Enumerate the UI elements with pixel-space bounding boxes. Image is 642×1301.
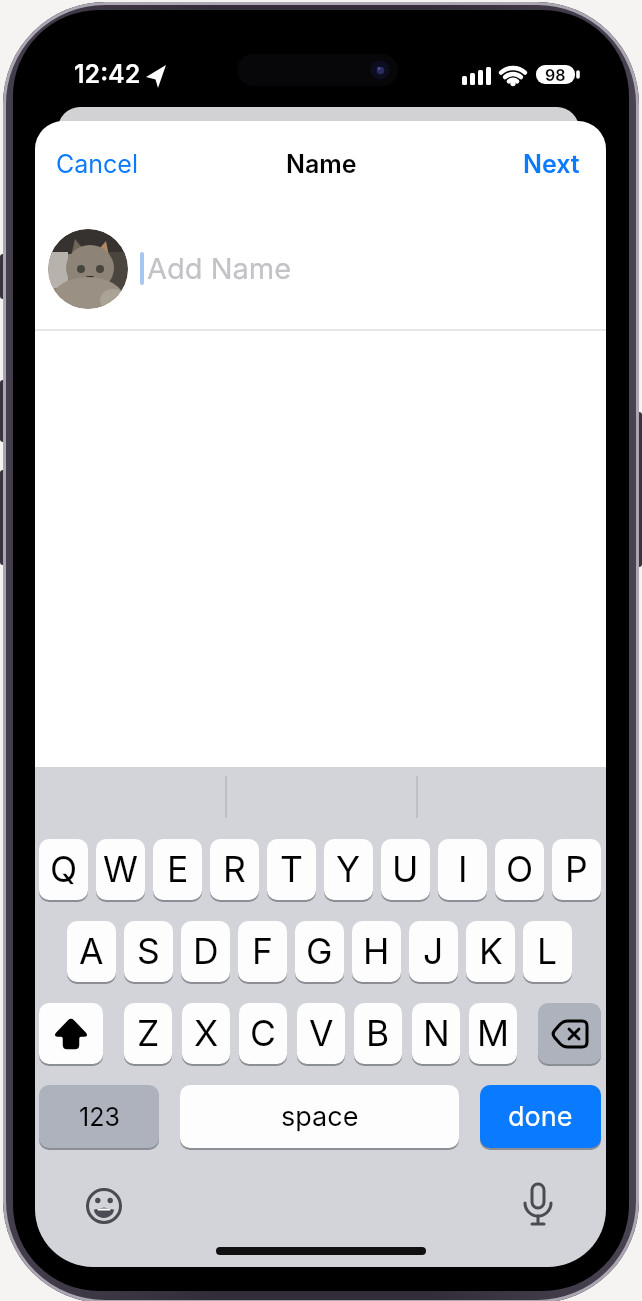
button[interactable]: K (466, 921, 515, 982)
staticText: Z (137, 1012, 160, 1055)
button[interactable]: done (480, 1085, 601, 1148)
button[interactable]: D (181, 921, 230, 982)
staticText: Add Name (147, 251, 292, 286)
staticText: A (79, 930, 104, 973)
button[interactable] (538, 1003, 601, 1064)
staticText: T (280, 848, 303, 891)
staticText: 12:42 (74, 59, 141, 89)
button[interactable]: Y (324, 839, 373, 900)
staticText: I (458, 848, 468, 891)
button[interactable]: H (352, 921, 401, 982)
button[interactable]: 123 (39, 1085, 159, 1148)
staticText: Q (50, 848, 78, 891)
button[interactable]: S (124, 921, 173, 982)
staticText: Next (523, 149, 580, 179)
button[interactable]: X (182, 1003, 230, 1064)
staticText: J (423, 930, 444, 973)
button[interactable]: Add Name (147, 251, 292, 286)
button[interactable]: U (381, 839, 430, 900)
button[interactable]: T (267, 839, 316, 900)
staticText: D (193, 930, 219, 973)
staticText: V (309, 1012, 334, 1055)
staticText: Cancel (56, 149, 138, 179)
button[interactable]: J (409, 921, 458, 982)
staticText: E (167, 848, 189, 891)
button[interactable]: Next (518, 148, 584, 180)
button[interactable]: B (354, 1003, 402, 1064)
staticText: G (306, 930, 333, 973)
button[interactable]: O (495, 839, 544, 900)
staticText: U (392, 848, 419, 891)
button[interactable]: E (153, 839, 202, 900)
button[interactable]: M (469, 1003, 517, 1064)
button[interactable] (518, 1182, 558, 1230)
staticText: H (363, 930, 390, 973)
button[interactable]: V (297, 1003, 345, 1064)
button[interactable]: A (67, 921, 116, 982)
staticText: S (137, 930, 160, 973)
staticText: C (250, 1012, 276, 1055)
button[interactable]: L (523, 921, 572, 982)
button[interactable] (84, 1186, 124, 1226)
button[interactable]: Z (124, 1003, 172, 1064)
staticText: W (103, 848, 138, 891)
staticText: N (423, 1012, 450, 1055)
staticText: M (477, 1012, 510, 1055)
button[interactable]: Q (39, 839, 88, 900)
staticText: X (194, 1012, 219, 1055)
button[interactable]: P (552, 839, 601, 900)
button[interactable]: C (239, 1003, 287, 1064)
button[interactable]: F (238, 921, 287, 982)
button[interactable]: G (295, 921, 344, 982)
staticText: space (281, 1100, 359, 1133)
staticText: Y (336, 848, 361, 891)
staticText: F (252, 930, 273, 973)
button[interactable]: Cancel (50, 148, 144, 180)
staticText: R (223, 848, 246, 891)
staticText: 98 (545, 65, 566, 84)
staticText: O (506, 848, 534, 891)
staticText: 123 (79, 1102, 120, 1132)
button[interactable]: space (180, 1085, 459, 1148)
button[interactable]: N (412, 1003, 460, 1064)
staticText: Name (286, 149, 357, 179)
button[interactable]: I (438, 839, 487, 900)
staticText: done (508, 1100, 573, 1133)
button[interactable] (39, 1003, 103, 1064)
staticText: K (479, 930, 503, 973)
button[interactable]: W (96, 839, 145, 900)
button[interactable]: R (210, 839, 259, 900)
staticText: B (366, 1012, 390, 1055)
staticText: P (565, 848, 588, 891)
staticText: L (537, 930, 558, 973)
